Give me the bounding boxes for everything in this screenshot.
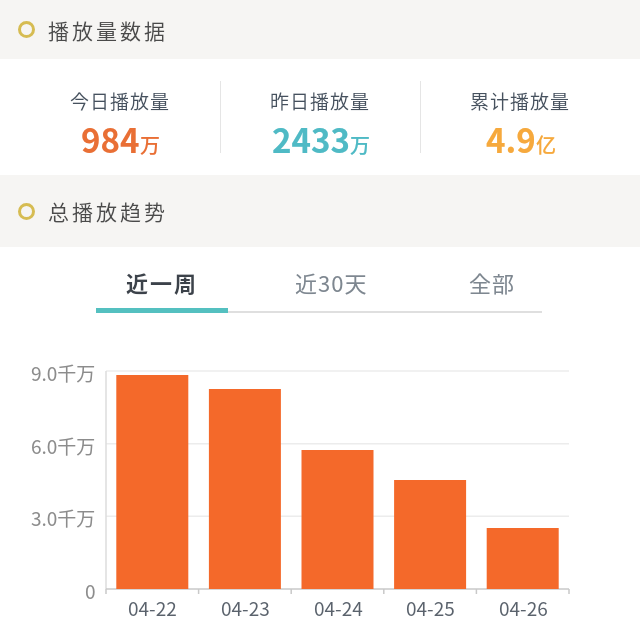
- button[interactable]: 昨日播放量: [221, 59, 420, 175]
- staticText: 播放量数据: [48, 15, 168, 45]
- staticText: 04-25: [406, 594, 455, 618]
- staticText: 04-26: [499, 594, 548, 618]
- button[interactable]: 近一周: [96, 251, 228, 312]
- staticText: 昨日播放量: [270, 87, 371, 115]
- staticText: 4.9: [486, 115, 536, 163]
- staticText: 04-22: [128, 594, 177, 618]
- staticText: 累计播放量: [470, 87, 571, 115]
- staticText: 近一周: [126, 266, 199, 298]
- staticText: 总播放趋势: [48, 196, 168, 226]
- staticText: 6.0千万: [31, 432, 96, 456]
- staticText: 亿: [536, 130, 556, 159]
- staticText: 万: [140, 130, 160, 159]
- staticText: 04-24: [314, 594, 363, 618]
- button[interactable]: 近30天: [265, 251, 397, 312]
- staticText: 9.0千万: [31, 359, 96, 383]
- staticText: 万: [350, 130, 370, 159]
- staticText: 0: [85, 577, 96, 601]
- staticText: 全部: [469, 266, 516, 298]
- staticText: 984: [81, 115, 140, 163]
- button[interactable]: 累计播放量: [421, 59, 620, 175]
- button[interactable]: 今日播放量: [20, 59, 220, 175]
- staticText: 近30天: [295, 266, 368, 298]
- staticText: 04-23: [221, 594, 270, 618]
- button[interactable]: 全部: [426, 251, 558, 312]
- staticText: 今日播放量: [70, 87, 171, 115]
- staticText: 2433: [272, 115, 350, 163]
- staticText: 3.0千万: [31, 504, 96, 528]
